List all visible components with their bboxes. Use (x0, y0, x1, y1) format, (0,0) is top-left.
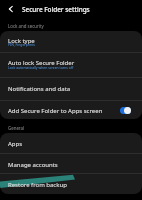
staticText: Restore from backup (8, 181, 67, 189)
staticText: Notifications and data (8, 85, 71, 93)
staticText: General (8, 125, 25, 131)
button[interactable]: Apps (0, 133, 142, 154)
button[interactable]: Manage accounts (0, 154, 142, 174)
button[interactable]: Notifications and data (0, 78, 142, 101)
staticText: Lock and security (8, 23, 44, 29)
staticText: Secure Folder settings (22, 5, 90, 14)
button[interactable]: Add Secure Folder to Apps screen (0, 101, 142, 119)
staticText: Add Secure Folder to Apps screen (8, 107, 103, 115)
staticText: Lock type (8, 37, 35, 45)
staticText: Auto lock Secure Folder (8, 59, 75, 67)
button[interactable]: Navigate up (0, 0, 22, 18)
button[interactable]: Lock type (0, 31, 142, 53)
button[interactable]: Add Secure Folder to Apps screen (120, 105, 131, 116)
staticText: Lock automatically when screen turns off (8, 65, 74, 70)
button[interactable]: Auto lock Secure Folder (0, 53, 142, 78)
staticText: Apps (8, 140, 23, 148)
staticText: Manage accounts (8, 161, 58, 169)
button[interactable]: Restore from backup (0, 174, 142, 194)
staticText: PIN, Fingerprints (8, 42, 35, 47)
